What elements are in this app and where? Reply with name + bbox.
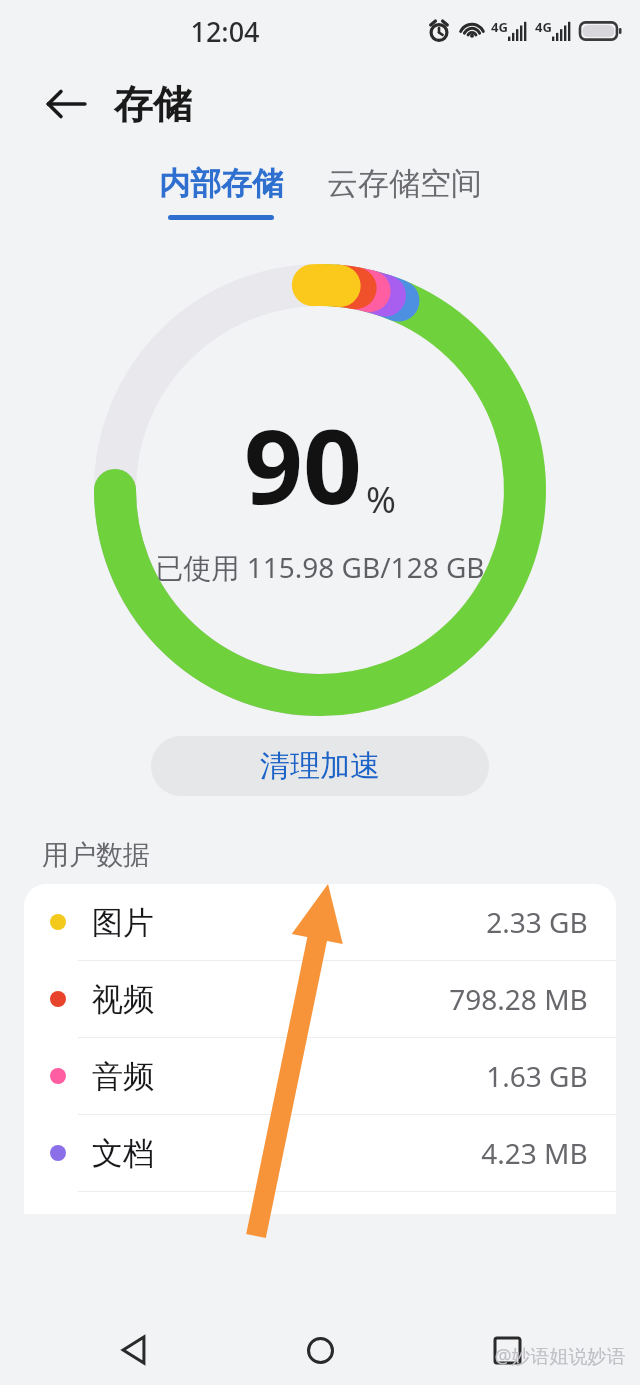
staticText: 存储 xyxy=(114,80,192,129)
staticText: 798.28 MB xyxy=(449,980,588,1018)
staticText: 90 xyxy=(244,394,362,534)
staticText: 图片 xyxy=(92,903,154,942)
staticText: 4.23 MB xyxy=(481,1134,588,1172)
staticText: 12:04 xyxy=(190,13,260,50)
button[interactable]: Back xyxy=(110,1327,156,1373)
button[interactable]: 视频 xyxy=(24,961,616,1038)
staticText: % xyxy=(366,475,396,524)
button[interactable]: 图片 xyxy=(24,884,616,961)
staticText: 2.33 GB xyxy=(486,903,588,941)
staticText: 云存储空间 xyxy=(327,164,482,203)
staticText: 音频 xyxy=(92,1057,154,1096)
staticText: 内部存储 xyxy=(159,164,283,203)
staticText: @妙语姐说妙语 xyxy=(494,1343,626,1369)
button[interactable]: Back xyxy=(40,78,92,130)
staticText: 4G xyxy=(535,18,552,36)
button[interactable]: 内部存储 xyxy=(153,164,289,220)
staticText: 清理加速 xyxy=(260,747,380,785)
button[interactable]: 音频 xyxy=(24,1038,616,1115)
staticText: 用户数据 xyxy=(42,838,150,872)
staticText: 文档 xyxy=(92,1134,154,1173)
button[interactable]: Home xyxy=(297,1327,343,1373)
staticText: 视频 xyxy=(92,980,154,1019)
button[interactable]: 文档 xyxy=(24,1115,616,1192)
button[interactable]: 清理加速 xyxy=(151,736,489,796)
staticText: 4G xyxy=(491,18,508,36)
staticText: 1.63 GB xyxy=(486,1057,588,1095)
button[interactable]: 云存储空间 xyxy=(321,164,488,203)
button[interactable]: Recents xyxy=(484,1327,530,1373)
staticText: 已使用 115.98 GB/128 GB xyxy=(155,548,485,586)
